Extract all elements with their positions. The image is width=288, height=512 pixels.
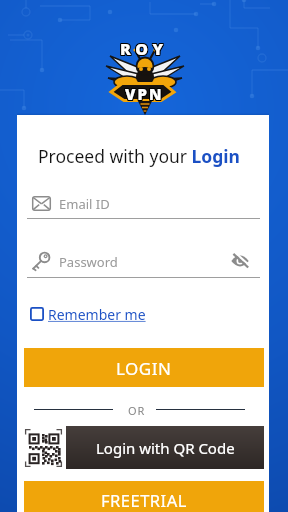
staticText: ROY [121, 38, 169, 60]
staticText: ROY [120, 38, 168, 60]
staticText: LOGIN [116, 357, 172, 380]
button[interactable]: Remember me [28, 303, 178, 327]
staticText: VPN [124, 84, 163, 104]
staticText: VPN [125, 83, 164, 103]
staticText: ROY [119, 38, 167, 60]
staticText: Proceed with your Login [38, 144, 240, 168]
staticText: Password [59, 253, 118, 271]
staticText: ROY [119, 39, 167, 61]
staticText: VPN [125, 85, 164, 105]
staticText: VPN [126, 85, 165, 105]
staticText: ROY [121, 37, 169, 59]
staticText: ROY [120, 39, 168, 61]
staticText: VPN [124, 85, 163, 105]
button[interactable]: Login with QR Code [66, 426, 264, 469]
staticText: FREETRIAL [101, 489, 187, 511]
staticText: VPN [126, 84, 165, 104]
staticText: ROY [121, 39, 169, 61]
staticText: OR [128, 403, 146, 417]
button[interactable]: FREETRIAL [24, 481, 264, 512]
staticText: VPN [125, 84, 164, 104]
staticText: ROY [119, 37, 167, 59]
staticText: ROY [120, 37, 168, 59]
staticText: Login with QR Code [96, 438, 235, 458]
staticText: Email ID [59, 195, 110, 213]
button[interactable]: LOGIN [24, 348, 264, 387]
staticText: Remember me [48, 305, 146, 324]
staticText: VPN [124, 83, 163, 103]
staticText: VPN [126, 83, 165, 103]
